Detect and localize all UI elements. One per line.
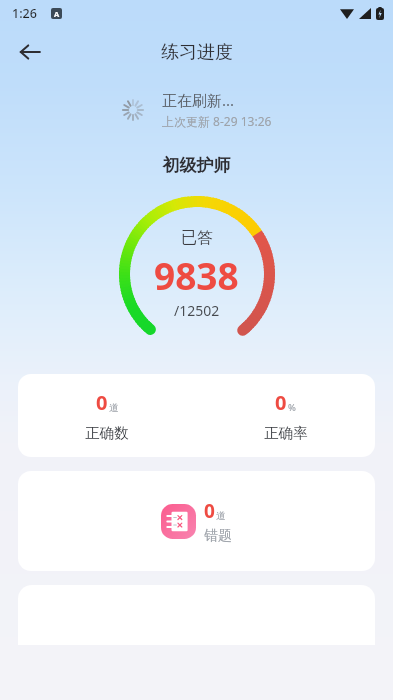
staticText: 1:26 bbox=[12, 5, 37, 22]
staticText: 正确率 bbox=[264, 424, 308, 442]
button[interactable]: 0 bbox=[196, 389, 375, 442]
staticText: % bbox=[288, 401, 296, 414]
staticText: 已答 bbox=[181, 228, 213, 248]
staticText: 道 bbox=[109, 402, 119, 414]
staticText: 9838 bbox=[154, 250, 239, 300]
staticText: 错题 bbox=[204, 527, 232, 545]
staticText: 上次更新 8-29 13:26 bbox=[162, 113, 272, 129]
button[interactable]: 0 bbox=[18, 389, 196, 442]
button[interactable]: 0 bbox=[18, 374, 375, 457]
staticText: /12502 bbox=[174, 301, 220, 320]
staticText: A bbox=[54, 9, 60, 19]
button[interactable]: 错题 bbox=[18, 471, 375, 571]
staticText: 正确数 bbox=[85, 424, 129, 442]
staticText: 0 bbox=[204, 498, 215, 524]
staticText: 道 bbox=[216, 510, 226, 522]
other: 错题 bbox=[161, 504, 196, 539]
staticText: 0 bbox=[275, 389, 287, 416]
staticText: 0 bbox=[96, 389, 108, 416]
staticText: 正在刷新... bbox=[162, 90, 235, 110]
staticText: 初级护师 bbox=[0, 155, 393, 176]
button[interactable]: Back bbox=[8, 30, 52, 74]
staticText: 练习进度 bbox=[161, 41, 233, 64]
